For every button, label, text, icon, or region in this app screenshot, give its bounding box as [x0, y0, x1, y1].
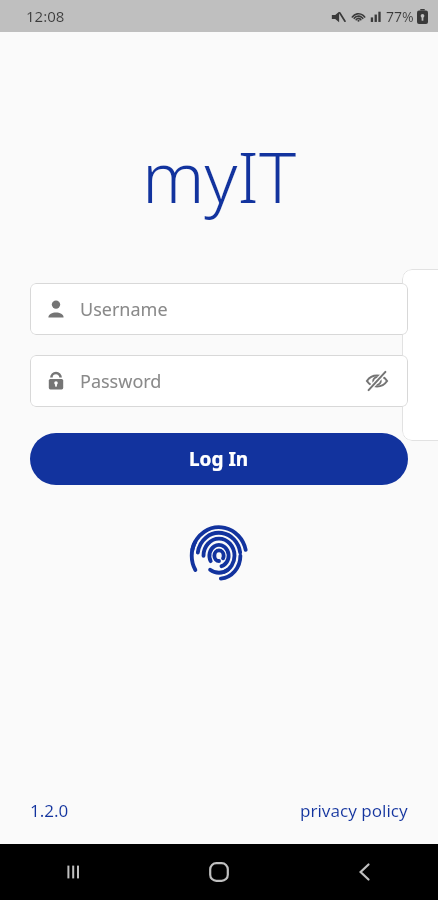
staticText: Username: [80, 297, 392, 322]
staticText: 12:08: [26, 6, 65, 26]
button[interactable]: Log In: [30, 433, 408, 485]
staticText: Password: [80, 369, 362, 394]
button[interactable]: Recent apps: [0, 844, 146, 900]
staticText: Log In: [189, 446, 249, 472]
button[interactable]: Username: [30, 283, 408, 335]
staticText: 77%: [386, 7, 414, 26]
button[interactable]: Back: [292, 844, 438, 900]
button[interactable]: Show password: [362, 366, 392, 396]
staticText: myIT: [142, 128, 297, 223]
button[interactable]: privacy policy: [300, 799, 408, 822]
button[interactable]: Home: [146, 844, 292, 900]
staticText: 1.2.0: [30, 799, 69, 822]
button[interactable]: Log in with fingerprint: [182, 515, 256, 589]
button[interactable]: 1.2.0: [30, 799, 69, 822]
button[interactable]: Password: [30, 355, 408, 407]
staticText: privacy policy: [300, 799, 408, 822]
